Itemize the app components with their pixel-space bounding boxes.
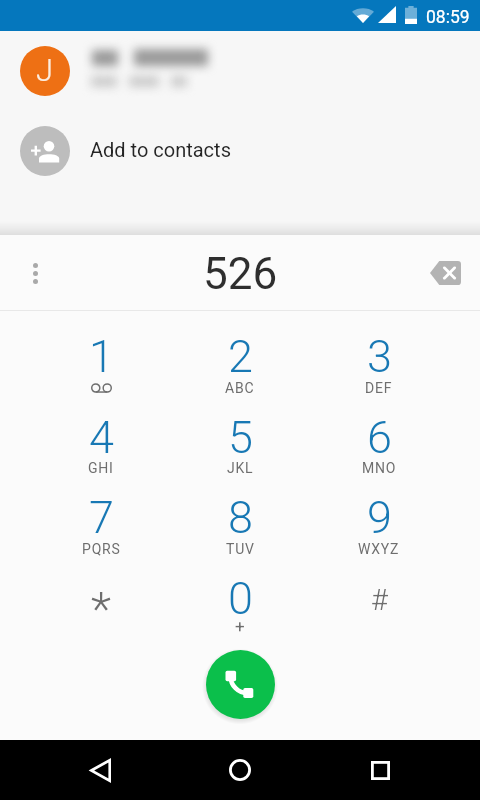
staticText: * [91, 581, 111, 636]
staticText: Add to contacts [90, 138, 231, 161]
staticText: 1 [89, 330, 114, 383]
button[interactable]: Back [70, 740, 130, 800]
button[interactable] [171, 402, 310, 483]
button[interactable] [310, 563, 449, 644]
button[interactable] [32, 482, 171, 563]
staticText: MNO [362, 460, 397, 476]
staticText: J [36, 52, 54, 88]
staticText: ABC [225, 380, 255, 396]
staticText: WXYZ [358, 541, 400, 557]
staticText: 7 [89, 491, 114, 544]
staticText: PQRS [82, 541, 121, 557]
button[interactable]: Home [210, 740, 270, 800]
staticText: DEF [365, 380, 393, 396]
staticText: 8 [228, 491, 253, 544]
staticText: 2 [228, 330, 253, 383]
staticText: 5 [228, 411, 253, 464]
staticText: 3 [367, 330, 392, 383]
staticText: GHI [88, 460, 114, 476]
staticText: + [235, 616, 245, 636]
button[interactable]: Add to contacts [0, 121, 480, 181]
staticText: # [371, 583, 388, 617]
button[interactable] [32, 321, 171, 402]
button[interactable] [32, 563, 171, 644]
button[interactable] [310, 321, 449, 402]
staticText: 08:59 [426, 7, 470, 28]
staticText: 6 [367, 411, 392, 464]
staticText: 526 [203, 248, 278, 300]
button[interactable]: More options [0, 236, 70, 310]
staticText: 4 [89, 411, 114, 464]
staticText: TUV [226, 541, 255, 557]
button[interactable] [310, 482, 449, 563]
button[interactable]: J [0, 39, 480, 102]
staticText: 9 [367, 491, 392, 544]
button[interactable] [171, 482, 310, 563]
staticText: 0 [228, 572, 253, 625]
staticText: JKL [227, 460, 254, 476]
button[interactable]: Call [206, 650, 275, 719]
button[interactable]: Backspace [408, 236, 480, 310]
button[interactable] [310, 402, 449, 483]
button[interactable]: Recents [350, 740, 410, 800]
button[interactable] [171, 563, 310, 644]
button[interactable] [171, 321, 310, 402]
button[interactable] [32, 402, 171, 483]
